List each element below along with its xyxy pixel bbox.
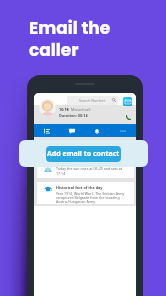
staticText: Duration: 00:14 [59,113,88,118]
button[interactable] [39,99,56,116]
staticText: Add email to contact [47,149,120,159]
button[interactable]: Call [125,114,132,121]
button[interactable]: Today the sun rises at 06:29 and sets at [37,163,134,178]
staticText: Historical fact of the day [56,185,103,190]
staticText: Search Number [79,98,106,103]
button[interactable]: Add email to contact [46,146,121,162]
button[interactable]: Search Number [67,96,118,105]
staticText: Year 1914, World War I. The Serbian Army… [56,191,125,204]
staticText: 10:18 [59,107,69,112]
button[interactable]: Historical fact of the day [37,182,134,204]
staticText: Today the sun rises at 06:29 and sets at [56,166,123,171]
staticText: Missed call [71,107,91,112]
button[interactable]: Notifications [84,124,110,137]
staticText: 17:14 [56,171,66,176]
button[interactable]: Messages [59,124,84,137]
button[interactable]: Activity [34,124,59,137]
button[interactable]: Email [123,97,132,106]
staticText: Email the caller [29,16,111,62]
button[interactable]: More [110,124,136,137]
